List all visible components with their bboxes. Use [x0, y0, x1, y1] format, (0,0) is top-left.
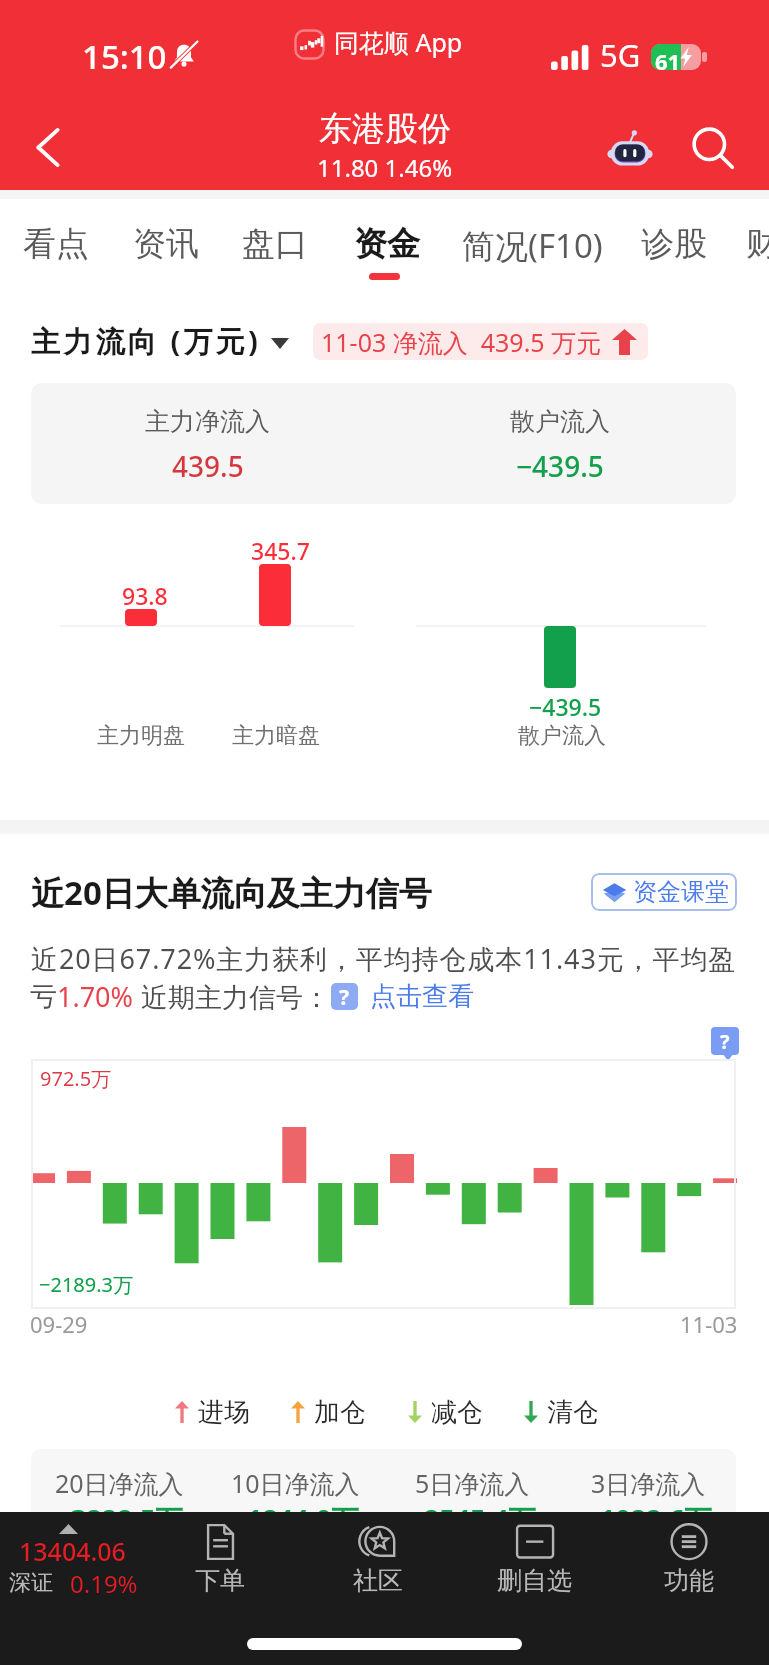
- staticText: 近20日67.72%主力获利，平均持仓成本11.43元，平均盈: [31, 940, 737, 977]
- staticText: 20日净流入: [55, 1466, 184, 1500]
- button[interactable]: 进场: [175, 1396, 250, 1428]
- button[interactable]: 下单: [150, 1512, 290, 1612]
- staticText: 10日净流入: [231, 1466, 360, 1500]
- staticText: 资讯: [133, 223, 199, 265]
- staticText: 主力明盘: [97, 722, 185, 750]
- staticText: −3228.5万: [55, 1500, 183, 1537]
- staticText: 减仓: [431, 1396, 483, 1428]
- button[interactable]: 主力净流入: [31, 383, 383, 504]
- staticText: 61: [655, 46, 681, 70]
- staticText: 5日净流入: [415, 1466, 530, 1500]
- button[interactable]: 盘口: [226, 206, 324, 276]
- staticText: 加仓: [314, 1396, 366, 1428]
- button[interactable]: 简况(F10): [446, 206, 619, 276]
- staticText: 15:10: [82, 34, 167, 79]
- button[interactable]: 减仓: [408, 1396, 483, 1428]
- button[interactable]: 点击查看: [370, 980, 474, 1013]
- staticText: 11-03: [680, 1309, 738, 1339]
- button[interactable]: Back: [12, 105, 84, 177]
- button[interactable]: 财: [730, 206, 769, 276]
- staticText: 主力净流入: [145, 406, 270, 437]
- button[interactable]: Change period: [262, 328, 298, 358]
- staticText: 简况(F10): [462, 223, 603, 268]
- staticText: 5G: [600, 34, 641, 76]
- staticText: −2545.4万: [408, 1500, 536, 1537]
- button[interactable]: 清仓: [524, 1396, 599, 1428]
- button[interactable]: 诊股: [625, 206, 723, 276]
- staticText: −439.5: [516, 447, 604, 485]
- staticText: 439.5: [172, 447, 244, 485]
- button[interactable]: 散户流入: [383, 383, 736, 504]
- staticText: 资金: [354, 223, 420, 265]
- staticText: 盘口: [242, 223, 308, 265]
- staticText: 看点: [23, 223, 89, 265]
- staticText: 诊股: [641, 223, 707, 265]
- staticText: 主力流向 (万元): [31, 321, 262, 361]
- staticText: 345.7: [251, 535, 310, 566]
- button[interactable]: 看点: [7, 206, 105, 276]
- staticText: 3日净流入: [591, 1466, 706, 1500]
- staticText: 同花顺 App: [334, 25, 463, 59]
- button[interactable]: Help: [331, 983, 358, 1010]
- staticText: 主力暗盘: [232, 722, 320, 750]
- staticText: 0.19%: [70, 1567, 138, 1600]
- staticText: 点击查看: [370, 980, 474, 1013]
- staticText: −1844.0万: [231, 1500, 359, 1537]
- button[interactable]: 资金课堂: [591, 873, 737, 911]
- staticText: 972.5万: [40, 1065, 112, 1092]
- staticText: 近期主力信号：: [134, 978, 331, 1015]
- staticText: 功能: [664, 1565, 714, 1596]
- staticText: 11.80 1.46%: [317, 151, 453, 184]
- staticText: 93.8: [122, 580, 168, 611]
- staticText: −2189.3万: [39, 1271, 133, 1298]
- staticText: 近20日大单流向及主力信号: [31, 870, 432, 915]
- staticText: ?: [720, 1028, 730, 1055]
- staticText: 11-03 净流入 439.5 万元: [321, 325, 602, 359]
- staticText: 散户流入: [510, 406, 610, 437]
- button[interactable]: AI assistant: [598, 122, 662, 186]
- staticText: 散户流入: [518, 722, 606, 750]
- staticText: −439.5: [529, 691, 602, 722]
- staticText: 东港股份: [319, 108, 451, 150]
- staticText: 亏: [30, 980, 57, 1014]
- button[interactable]: 删自选: [464, 1512, 604, 1612]
- staticText: 财: [746, 223, 769, 265]
- staticText: −1022.6万: [584, 1500, 712, 1537]
- staticText: 09-29: [30, 1309, 88, 1339]
- button[interactable]: 5日净流入: [384, 1449, 560, 1512]
- staticText: 13404.06: [19, 1534, 126, 1568]
- staticText: 社区: [353, 1565, 403, 1596]
- button[interactable]: 3日净流入: [560, 1449, 736, 1512]
- button[interactable]: Help: [711, 1027, 739, 1055]
- button[interactable]: 社区: [308, 1512, 448, 1612]
- button[interactable]: 10日净流入: [207, 1449, 383, 1512]
- staticText: 资金课堂: [633, 877, 729, 907]
- staticText: 深证: [9, 1569, 53, 1597]
- button[interactable]: 功能: [619, 1512, 759, 1612]
- staticText: ?: [339, 983, 350, 1010]
- button[interactable]: 加仓: [291, 1396, 366, 1428]
- staticText: 删自选: [497, 1565, 572, 1596]
- button[interactable]: 11-03 净流入 439.5 万元: [313, 323, 648, 360]
- staticText: 清仓: [547, 1396, 599, 1428]
- button[interactable]: 20日净流入: [31, 1449, 207, 1512]
- button[interactable]: 资金: [338, 206, 436, 276]
- button[interactable]: 资讯: [117, 206, 215, 276]
- staticText: 进场: [198, 1396, 250, 1428]
- button[interactable]: 13404.06: [0, 1512, 155, 1612]
- staticText: 1.70%: [57, 978, 134, 1015]
- button[interactable]: Search: [681, 116, 745, 180]
- staticText: 下单: [195, 1565, 245, 1596]
